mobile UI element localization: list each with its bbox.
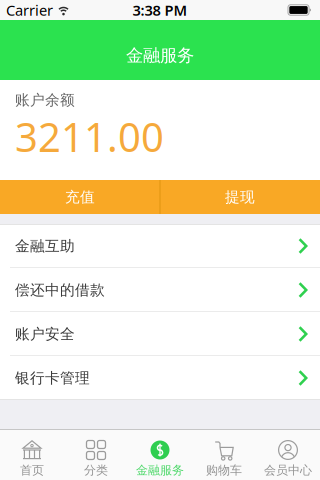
staticText: 偿还中的借款 <box>15 281 105 299</box>
button[interactable]: 提现 <box>160 180 320 214</box>
staticText: 3211.00 <box>15 110 164 163</box>
staticText: 银行卡管理 <box>15 369 90 387</box>
staticText: 提现 <box>225 188 255 206</box>
staticText: 账户安全 <box>15 325 75 343</box>
button[interactable]: 充值 <box>0 180 160 214</box>
staticText: 会员中心 <box>264 463 312 478</box>
button[interactable]: 首页 <box>0 430 64 480</box>
staticText: 金融互助 <box>15 237 75 255</box>
staticText: 金融服务 <box>126 45 194 66</box>
staticText: 充值 <box>65 188 95 206</box>
staticText: 购物车 <box>206 463 242 478</box>
button[interactable]: 偿还中的借款 <box>0 268 320 312</box>
button[interactable]: 金融服务 <box>128 430 192 480</box>
button[interactable]: 会员中心 <box>256 430 320 480</box>
button[interactable]: 银行卡管理 <box>0 356 320 400</box>
staticText: 3:38 PM <box>132 0 187 20</box>
button[interactable]: 分类 <box>64 430 128 480</box>
staticText: 金融服务 <box>136 463 184 478</box>
button[interactable]: 金融互助 <box>0 224 320 268</box>
button[interactable]: 购物车 <box>192 430 256 480</box>
staticText: 账户余额 <box>15 91 75 109</box>
staticText: Carrier <box>6 0 53 20</box>
staticText: 首页 <box>20 463 44 478</box>
staticText: 分类 <box>84 463 108 478</box>
button[interactable]: 账户安全 <box>0 312 320 356</box>
